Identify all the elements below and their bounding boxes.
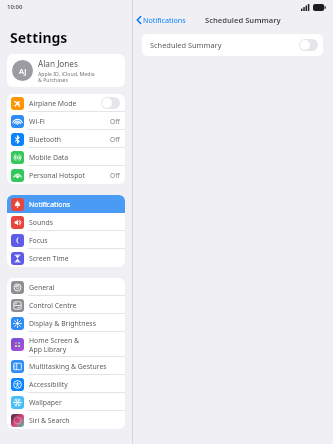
staticText: Focus <box>29 236 120 245</box>
staticText: Personal Hotspot <box>29 171 110 180</box>
button[interactable]: Siri & Search <box>7 411 125 429</box>
staticText: Control Centre <box>29 301 120 310</box>
button[interactable]: Bluetooth <box>7 130 125 148</box>
staticText: 10:00 <box>7 3 23 11</box>
staticText: Off <box>110 135 120 144</box>
button[interactable]: Scheduled Summary <box>142 34 323 56</box>
button[interactable]: Notifications <box>7 195 125 213</box>
button[interactable]: Home Screen & App Library <box>7 332 125 357</box>
staticText: Mobile Data <box>29 153 120 162</box>
button[interactable]: Display & Brightness <box>7 314 125 332</box>
button[interactable]: Multitasking & Gestures <box>7 357 125 375</box>
staticText: Off <box>110 117 120 126</box>
staticText: Wi-Fi <box>29 117 110 126</box>
button[interactable]: General <box>7 278 125 296</box>
staticText: Sounds <box>29 218 120 227</box>
button[interactable]: Wallpaper <box>7 393 125 411</box>
button[interactable]: Airplane Mode <box>7 94 125 112</box>
button[interactable]: Mobile Data <box>7 148 125 166</box>
button[interactable]: Scheduled Summary toggle <box>299 39 318 51</box>
button[interactable]: Focus <box>7 231 125 249</box>
staticText: Bluetooth <box>29 135 110 144</box>
staticText: Screen Time <box>29 254 120 263</box>
staticText: Scheduled Summary <box>205 15 281 25</box>
button[interactable]: Personal Hotspot <box>7 166 125 184</box>
staticText: Settings <box>10 28 68 47</box>
button[interactable]: Control Centre <box>7 296 125 314</box>
staticText: Wallpaper <box>29 398 120 407</box>
staticText: Display & Brightness <box>29 319 120 328</box>
staticText: General <box>29 283 120 292</box>
staticText: Apple ID, iCloud, Media & Purchases <box>38 70 95 84</box>
staticText: Siri & Search <box>29 416 120 425</box>
staticText: Alan Jones <box>38 58 78 69</box>
staticText: Scheduled Summary <box>150 40 222 50</box>
button[interactable]: Sounds <box>7 213 125 231</box>
staticText: Multitasking & Gestures <box>29 362 120 371</box>
staticText: Off <box>110 171 120 180</box>
button[interactable]: Notifications <box>135 14 188 26</box>
staticText: Notifications <box>29 200 120 209</box>
staticText: Notifications <box>143 15 186 25</box>
button[interactable]: Accessibility <box>7 375 125 393</box>
staticText: Accessibility <box>29 380 120 389</box>
button[interactable]: Screen Time <box>7 249 125 267</box>
staticText: AJ <box>19 66 27 76</box>
button[interactable]: AJ <box>7 54 125 87</box>
button[interactable]: Scheduled Summary toggle <box>101 97 120 109</box>
staticText: Home Screen & App Library <box>29 336 120 354</box>
staticText: Airplane Mode <box>29 99 101 108</box>
button[interactable]: Wi-Fi <box>7 112 125 130</box>
